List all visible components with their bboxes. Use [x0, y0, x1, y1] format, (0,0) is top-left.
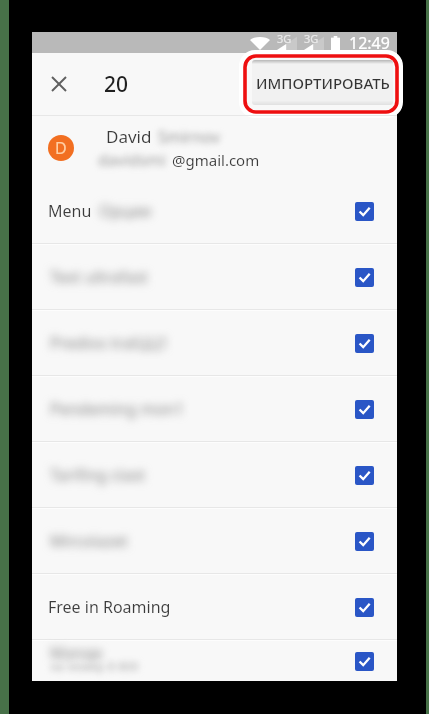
staticText: David	[106, 125, 152, 148]
staticText: 12:49	[349, 32, 390, 53]
button[interactable]: D	[32, 116, 397, 179]
staticText: 3G	[304, 31, 319, 46]
staticText: Manqe	[50, 642, 103, 664]
staticText: Free in Roaming	[48, 596, 171, 618]
staticText: @gmail.com	[172, 150, 260, 170]
staticText: Predios tralЦЦ1	[50, 332, 169, 354]
staticText: 20	[104, 70, 129, 99]
button[interactable]: ИМПОРТИРОВАТЬ	[252, 60, 393, 105]
button[interactable]: Checked	[355, 400, 374, 419]
button[interactable]: Pendeming mon1	[32, 377, 397, 441]
staticText: D	[55, 137, 67, 159]
button[interactable]: Checked	[355, 532, 374, 551]
staticText: Menu	[48, 200, 92, 222]
button[interactable]: Tarifing clast	[32, 443, 397, 507]
staticText: Pendeming mon1	[50, 398, 185, 420]
button[interactable]: Checked	[355, 202, 374, 221]
button[interactable]: Checked	[355, 598, 374, 617]
button[interactable]: Manqe	[32, 641, 397, 681]
staticText: Text ultrafast	[50, 266, 148, 288]
staticText: Opции	[99, 200, 152, 222]
button[interactable]: Text ultrafast	[32, 245, 397, 309]
button[interactable]: Mircolazet	[32, 509, 397, 573]
staticText: Tarifing clast	[50, 464, 146, 486]
button[interactable]: Free in Roaming	[32, 575, 397, 639]
button[interactable]: Menu	[32, 179, 397, 243]
staticText: ИМПОРТИРОВАТЬ	[256, 73, 390, 93]
staticText: на номер 8 800	[50, 658, 139, 674]
button[interactable]: Checked	[355, 268, 374, 287]
staticText: Mircolazet	[50, 530, 128, 552]
button[interactable]: Checked	[355, 652, 374, 671]
staticText: Smirnov	[158, 126, 220, 148]
staticText: davidsmi	[98, 149, 166, 171]
button[interactable]: Predios tralЦЦ1	[32, 311, 397, 375]
button[interactable]: Close	[40, 65, 78, 103]
button[interactable]: Checked	[355, 334, 374, 353]
staticText: 3G	[277, 31, 292, 46]
button[interactable]: Checked	[355, 466, 374, 485]
